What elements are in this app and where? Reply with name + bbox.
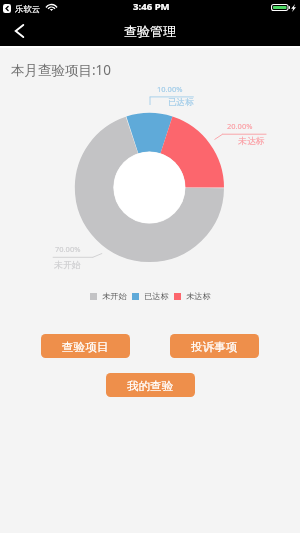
staticText: 投诉事项 [191, 340, 238, 355]
staticText: 本月查验项目:10 [11, 61, 112, 79]
staticText: 已达标 [144, 291, 169, 301]
staticText: 未达标 [238, 135, 265, 146]
staticText: 查验管理 [124, 23, 176, 39]
staticText: 70.00% [55, 244, 81, 254]
button[interactable]: Back [6, 18, 32, 44]
staticText: 未达标 [186, 291, 211, 301]
staticText: 乐软云 [15, 4, 41, 15]
staticText: 我的查验 [127, 379, 174, 394]
staticText: 未开始 [54, 259, 81, 270]
staticText: 20.00% [227, 121, 253, 131]
button[interactable]: 查验项目 [41, 334, 130, 358]
staticText: 未开始 [102, 291, 127, 301]
button[interactable]: 投诉事项 [170, 334, 259, 358]
staticText: 查验项目 [62, 340, 109, 355]
staticText: 10.00% [157, 84, 183, 94]
staticText: 已达标 [168, 97, 194, 108]
staticText: 3:46 PM [133, 0, 170, 13]
button[interactable]: 我的查验 [106, 373, 195, 397]
